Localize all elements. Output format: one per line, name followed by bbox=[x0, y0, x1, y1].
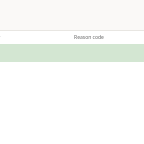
button[interactable]: Quantity bbox=[0, 31, 144, 44]
staticText: Quantity bbox=[0, 34, 1, 41]
staticText: Reason code bbox=[74, 34, 104, 41]
